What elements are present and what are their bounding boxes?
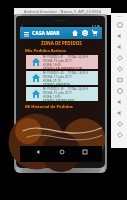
button[interactable]: Home	[113, 107, 126, 118]
button[interactable]: Profile	[80, 28, 90, 38]
button[interactable]: Rotate right	[113, 63, 126, 74]
staticText: ESTADO: EN PREPARACION	[43, 67, 83, 69]
button[interactable]: Zoom	[113, 85, 126, 96]
staticText: HORA: 21:10	[43, 79, 61, 83]
button[interactable]: Volume up	[113, 30, 126, 41]
staticText: N° PEDIDO: 41 - TOTAL: 32,00 €	[43, 55, 89, 59]
staticText: N° PEDIDO: 40 - TOTAL: 18,50 €	[43, 71, 89, 75]
button[interactable]: Back	[32, 146, 43, 157]
staticText: ZONA DE PEDIDOS	[41, 40, 82, 46]
button[interactable]: Home	[56, 146, 67, 157]
staticText: FECHA: 15 julio 2017	[43, 91, 72, 95]
button[interactable]: Cart	[90, 28, 100, 38]
button[interactable]: Overview	[113, 118, 126, 129]
button[interactable]: Power	[113, 19, 126, 30]
staticText: HORA: 14:45	[43, 63, 61, 67]
button[interactable]: Rotate left	[113, 52, 126, 63]
button[interactable]: Volume down	[113, 41, 126, 52]
button[interactable]: More	[113, 129, 126, 140]
staticText: Android Emulator - Nexus_5_API_23:5554	[24, 9, 102, 14]
button[interactable]: N° PEDIDO: 40 - TOTAL: 18,50 €	[26, 71, 98, 85]
staticText: CASA MIAR	[32, 30, 60, 37]
staticText: ESTADO: ENVIADO	[43, 83, 71, 85]
button[interactable]: Home	[70, 28, 80, 38]
staticText: N° PEDIDO: 39 - TOTAL: 24,00 €	[43, 87, 89, 91]
button[interactable]: Menu	[22, 29, 31, 38]
button[interactable]: N° PEDIDO: 39 - TOTAL: 24,00 €	[26, 87, 98, 101]
staticText: FECHA: 17 julio 2017	[43, 75, 72, 79]
staticText: ESTADO: ENTREGADO	[43, 99, 75, 101]
staticText: HORA: 13:05	[43, 95, 61, 99]
staticText: Mis Pedidos Activos	[25, 48, 67, 54]
button[interactable]: More	[113, 13, 126, 19]
button[interactable]: Back	[113, 96, 126, 107]
button[interactable]: N° PEDIDO: 41 - TOTAL: 32,00 €	[26, 55, 98, 69]
button[interactable]: Recents	[79, 146, 90, 157]
staticText: Mi Historial de Pedidos	[25, 104, 73, 110]
button[interactable]: Screenshot	[113, 74, 126, 85]
staticText: FECHA: 19 julio 2017	[43, 59, 72, 63]
